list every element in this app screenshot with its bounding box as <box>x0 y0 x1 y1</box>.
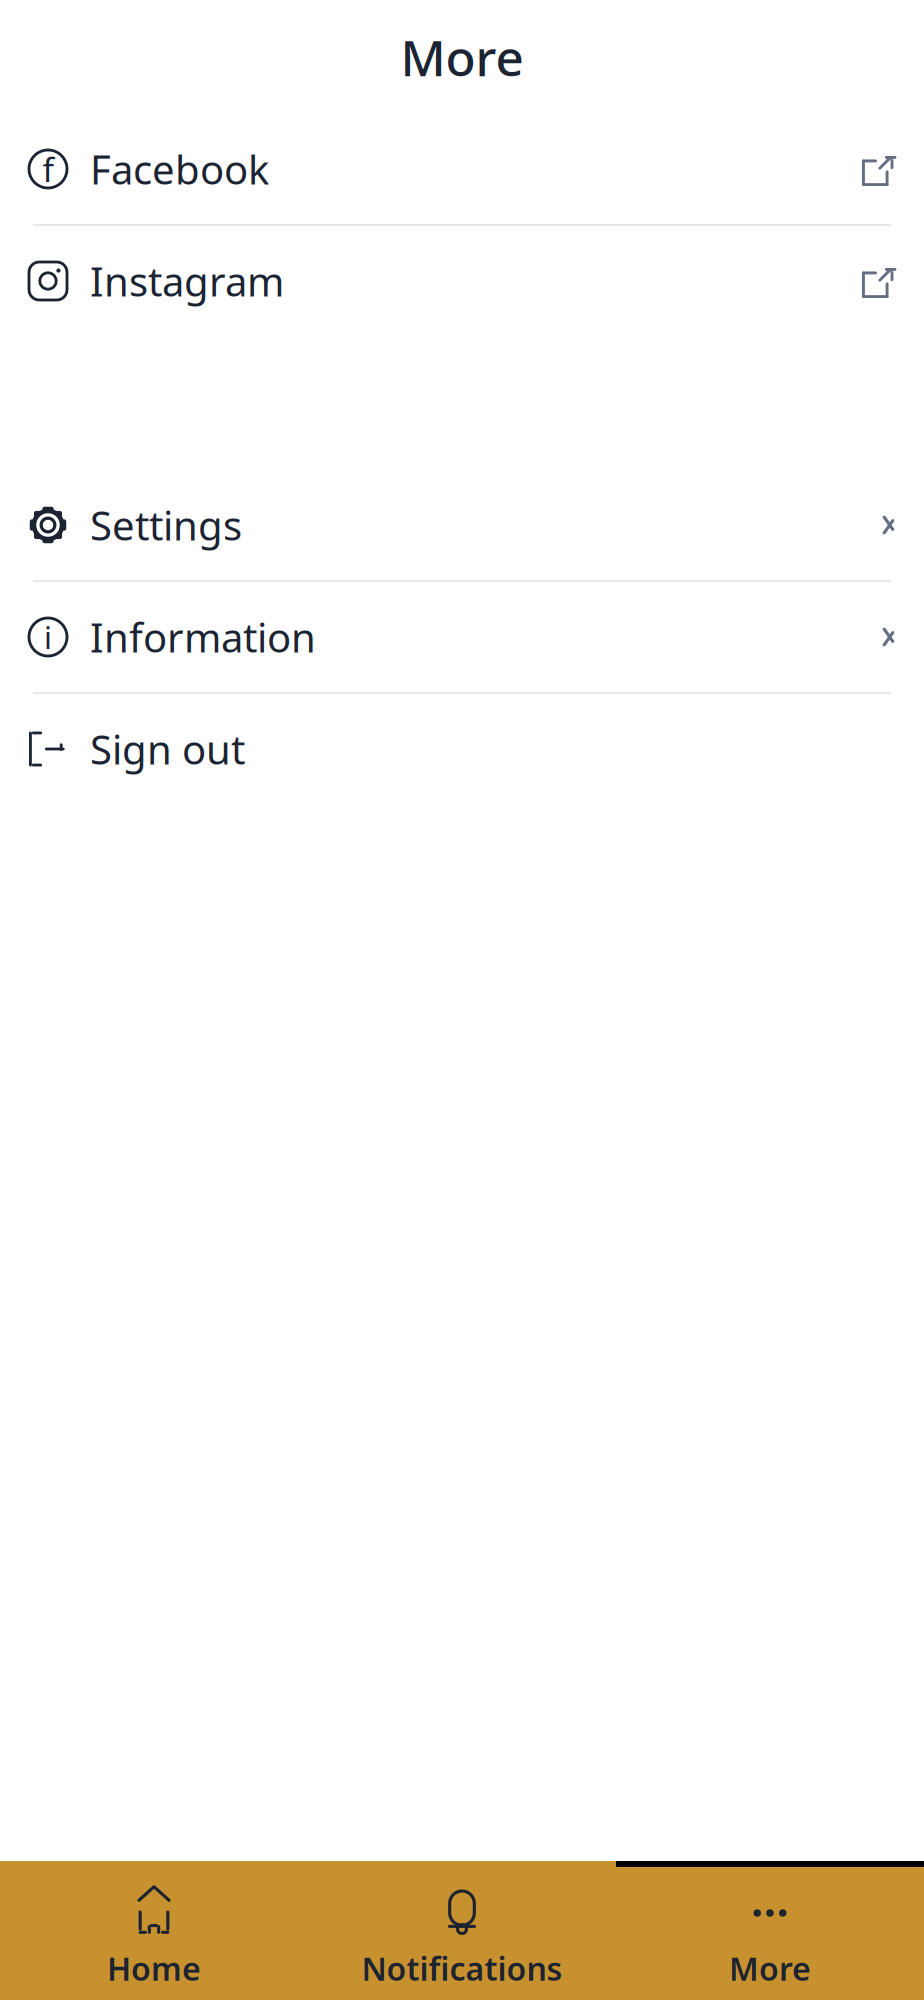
staticText: More <box>400 24 523 90</box>
staticText: Settings <box>90 498 242 551</box>
staticText: Notifications <box>361 1947 562 1989</box>
button[interactable]: f <box>0 114 924 224</box>
staticText: Facebook <box>90 142 269 195</box>
button[interactable]: More <box>616 1861 924 2000</box>
staticText: More <box>729 1947 811 1989</box>
button[interactable]: Home <box>0 1861 308 2000</box>
button[interactable]: Instagram <box>0 226 924 336</box>
staticText: Information <box>90 610 316 663</box>
staticText: f <box>42 147 53 191</box>
staticText: Instagram <box>90 254 284 307</box>
button[interactable]: Notifications <box>308 1861 616 2000</box>
button[interactable]: i <box>0 582 924 692</box>
button[interactable]: Settings <box>0 470 924 580</box>
staticText: Home <box>107 1947 201 1989</box>
staticText: Sign out <box>90 722 245 775</box>
button[interactable]: Sign out <box>0 694 924 804</box>
staticText: i <box>44 617 52 657</box>
